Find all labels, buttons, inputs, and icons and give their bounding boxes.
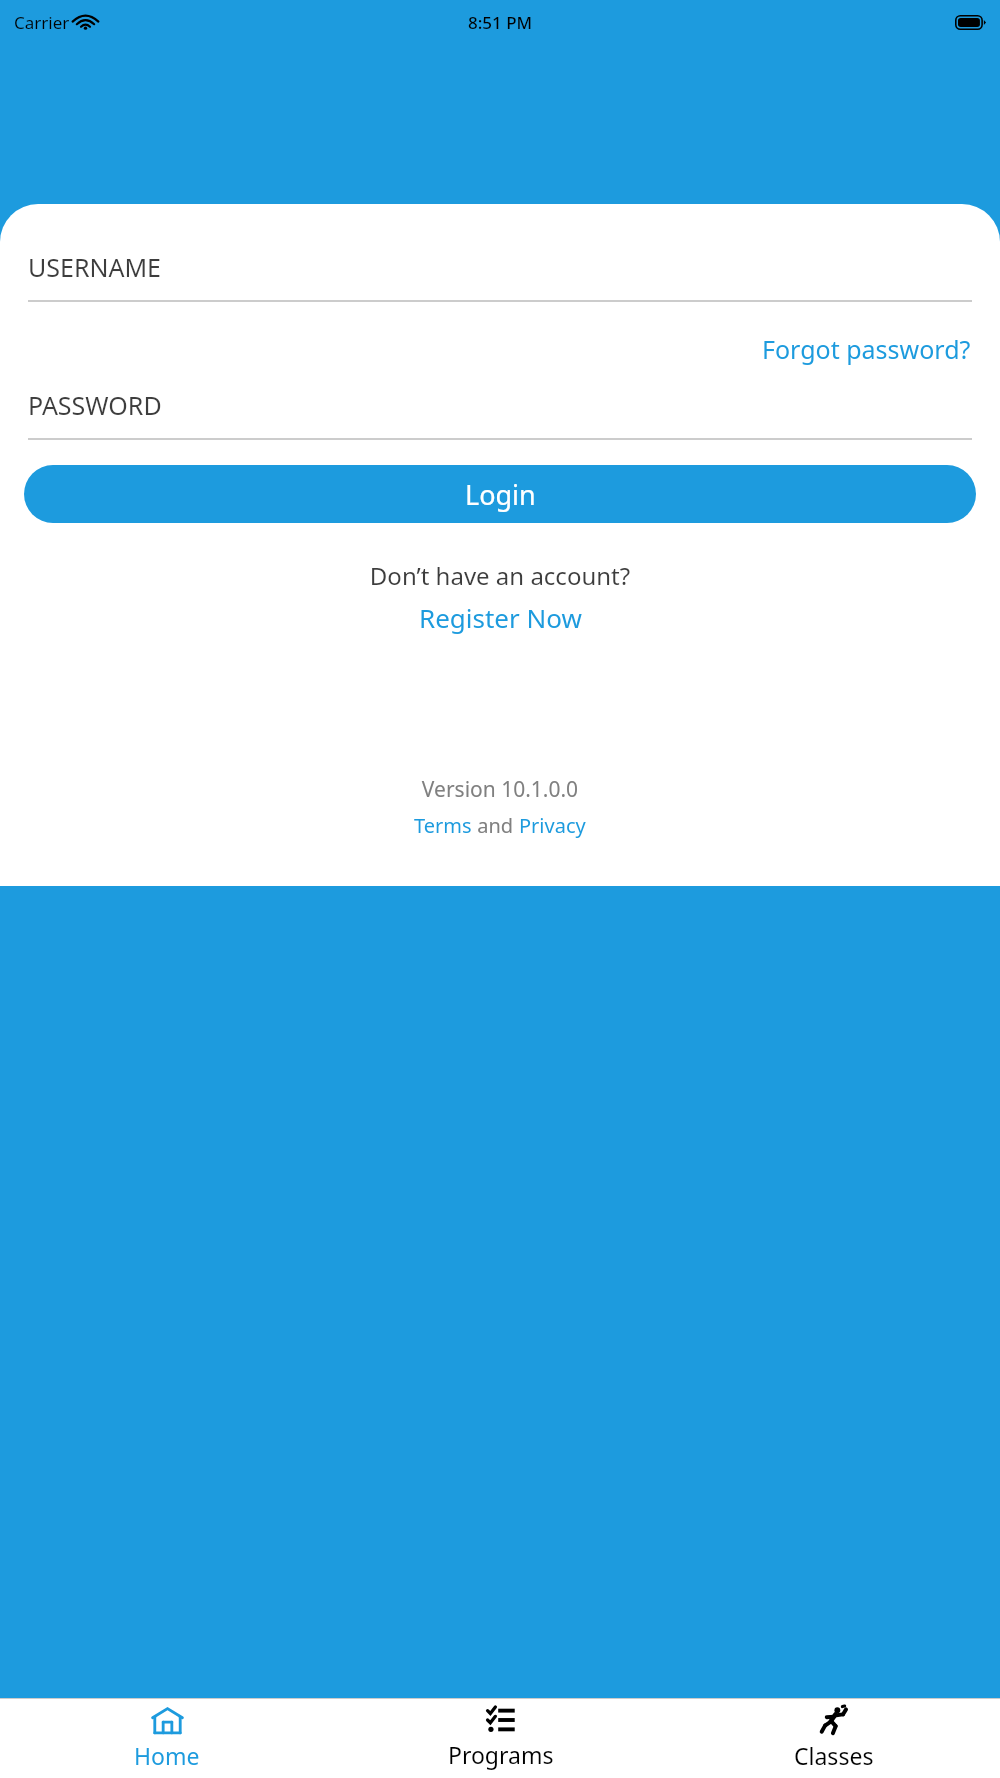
staticText: Terms <box>414 812 472 839</box>
staticText: Home <box>134 1740 200 1771</box>
staticText: Classes <box>794 1740 874 1771</box>
staticText: Carrier <box>14 11 70 34</box>
staticText: Privacy <box>519 812 586 839</box>
button[interactable]: USERNAME <box>28 250 972 302</box>
staticText: Programs <box>448 1739 554 1770</box>
staticText: PASSWORD <box>28 388 162 422</box>
button[interactable]: Forgot password? <box>760 328 973 370</box>
staticText: Register Now <box>419 600 582 635</box>
button[interactable]: Register Now <box>413 598 588 637</box>
button[interactable]: Login <box>24 465 976 523</box>
button[interactable]: Privacy <box>519 812 586 839</box>
button[interactable]: Programs <box>334 1699 667 1778</box>
button[interactable]: Home <box>0 1699 334 1778</box>
staticText: Welcome! <box>24 196 203 246</box>
button[interactable]: Classes <box>667 1699 1000 1778</box>
button[interactable]: Terms <box>414 812 472 839</box>
staticText: Login <box>465 476 536 513</box>
staticText: Forgot password? <box>762 332 971 366</box>
staticText: 8:51 PM <box>468 11 533 34</box>
button[interactable]: PASSWORD <box>28 388 972 440</box>
staticText: USERNAME <box>28 250 162 284</box>
staticText: and <box>472 812 519 839</box>
staticText: Don’t have an account? <box>0 559 1000 592</box>
staticText: Login to Carmel Sports Club <box>24 250 392 288</box>
staticText: Version 10.1.0.0 <box>0 775 1000 804</box>
